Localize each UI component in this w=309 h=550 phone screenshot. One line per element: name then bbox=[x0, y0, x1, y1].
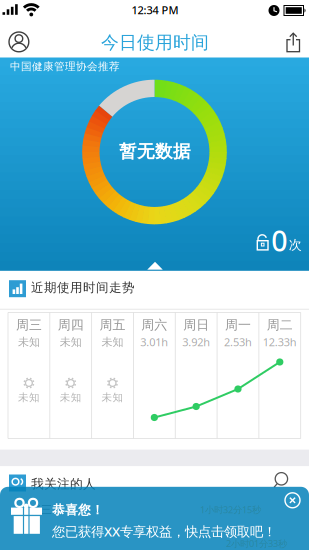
button[interactable]: 领取专享权益 bbox=[0, 487, 309, 550]
staticText: 12.33h bbox=[263, 334, 297, 349]
button[interactable]: 分享 bbox=[279, 28, 307, 56]
staticText: 近期使用时间走势 bbox=[31, 280, 135, 295]
staticText: 周一 bbox=[225, 317, 251, 333]
staticText: 未知 bbox=[60, 335, 82, 349]
staticText: 我关注的人 bbox=[31, 476, 96, 492]
staticText: 未知 bbox=[18, 391, 40, 404]
staticText: 未知 bbox=[60, 391, 82, 404]
staticText: 未知 bbox=[18, 335, 40, 349]
staticText: 恭喜您！ bbox=[52, 502, 104, 518]
staticText: 未知 bbox=[101, 391, 123, 404]
staticText: 周日 bbox=[183, 317, 209, 333]
staticText: 12:34 PM bbox=[131, 2, 178, 17]
button[interactable]: 关闭 bbox=[282, 490, 302, 510]
staticText: 2.53h bbox=[224, 334, 252, 349]
staticText: 周五 bbox=[99, 317, 125, 333]
staticText: 次 bbox=[289, 237, 302, 253]
staticText: 今日使用时间 bbox=[101, 31, 209, 54]
staticText: 暂无数据 bbox=[119, 140, 191, 162]
staticText: 周六 bbox=[141, 317, 167, 333]
button[interactable]: 个人中心 bbox=[4, 27, 34, 57]
staticText: 您已获得XX专享权益，快点击领取吧！ bbox=[52, 522, 276, 540]
button[interactable]: 搜索 bbox=[270, 469, 296, 495]
staticText: 2小时01分33秒 bbox=[226, 537, 287, 550]
staticText: 未知 bbox=[101, 335, 123, 349]
staticText: 1小时32分15秒 bbox=[200, 503, 261, 516]
staticText: 0 bbox=[271, 221, 287, 260]
staticText: 周四 bbox=[58, 317, 84, 333]
staticText: 中国健康管理协会推荐 bbox=[10, 60, 120, 73]
staticText: 3.92h bbox=[182, 334, 210, 349]
staticText: 张三 bbox=[30, 503, 52, 516]
staticText: 3.01h bbox=[140, 334, 168, 349]
staticText: 周二 bbox=[267, 317, 293, 333]
staticText: 周三 bbox=[16, 317, 42, 333]
